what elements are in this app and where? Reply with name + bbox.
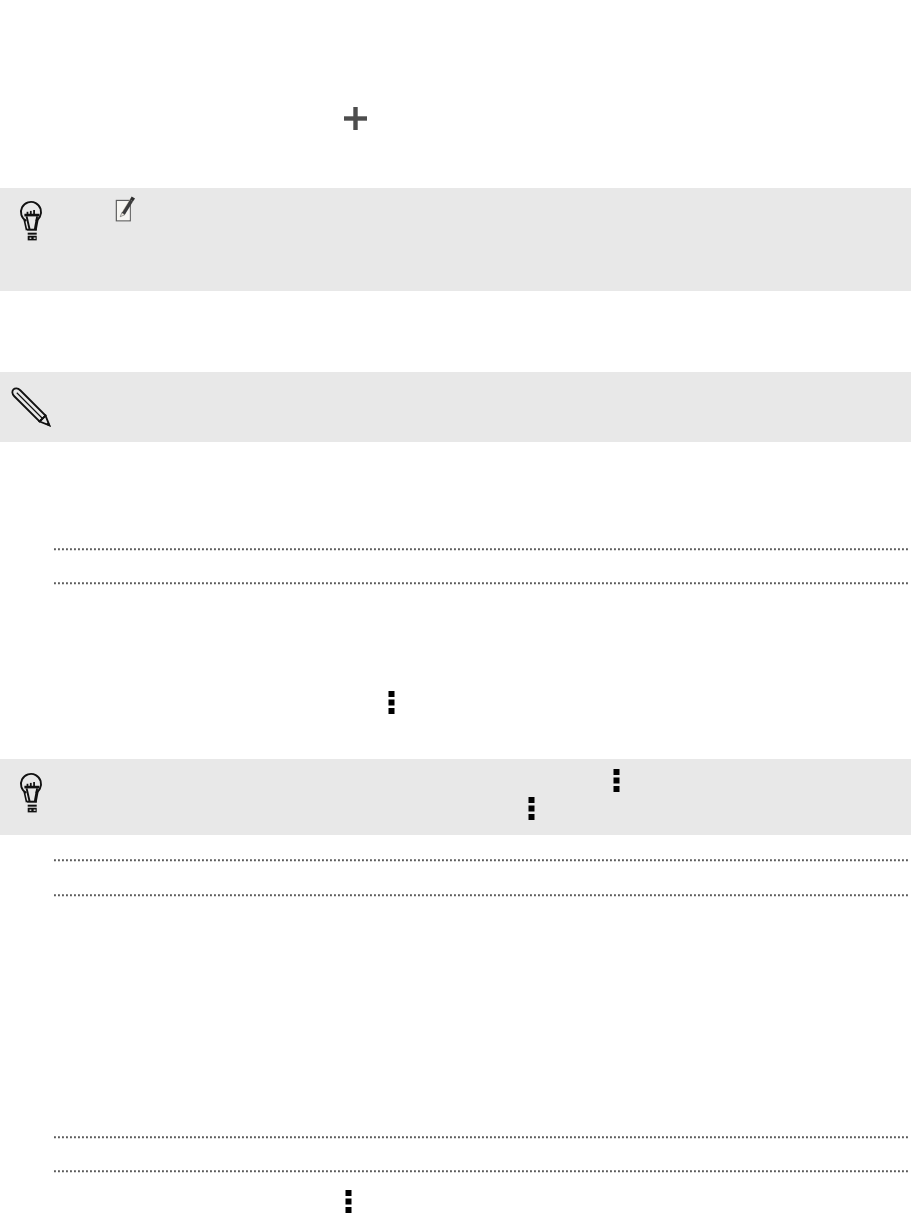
button[interactable]: More options xyxy=(528,797,535,820)
button[interactable]: More options xyxy=(613,769,620,792)
button[interactable]: More options xyxy=(345,1190,352,1213)
button[interactable]: Add xyxy=(344,107,367,130)
button[interactable]: More options xyxy=(388,691,395,714)
